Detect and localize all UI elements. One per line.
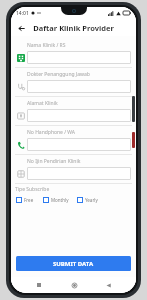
button[interactable]: Back (14, 21, 28, 35)
staticText: SUBMIT DATA (53, 260, 94, 268)
staticText: No Handphone / WA (27, 129, 76, 136)
button[interactable]: No Handphone / WA (11, 126, 136, 154)
button[interactable]: SUBMIT DATA (16, 256, 131, 271)
button[interactable]: Free (15, 196, 35, 204)
button[interactable]: Back (102, 279, 114, 291)
staticText: Monthly (51, 197, 69, 203)
staticText: Free (24, 197, 34, 203)
staticText: Dokter Penanggung Jawab (27, 71, 90, 78)
staticText: No Ijin Pendirian Klinik (27, 158, 81, 165)
staticText: Nama Klinik / RS (27, 42, 66, 49)
button[interactable]: Nama Klinik / RS (11, 39, 136, 67)
button[interactable]: No Ijin Pendirian Klinik (11, 155, 136, 183)
button[interactable]: Monthly (42, 196, 70, 204)
staticText: Tipe Subscribe (15, 186, 50, 193)
button[interactable]: Recents (33, 279, 45, 291)
staticText: Alamat Klinik (27, 100, 58, 107)
button[interactable]: Alamat Klinik (11, 97, 136, 125)
staticText: Daftar Klinik Provider (33, 23, 114, 33)
button[interactable]: Home (68, 279, 80, 291)
staticText: 14:01 (16, 10, 29, 17)
staticText: Yearly (85, 197, 98, 203)
button[interactable]: Dokter Penanggung Jawab (11, 68, 136, 96)
button[interactable]: Yearly (76, 196, 99, 204)
